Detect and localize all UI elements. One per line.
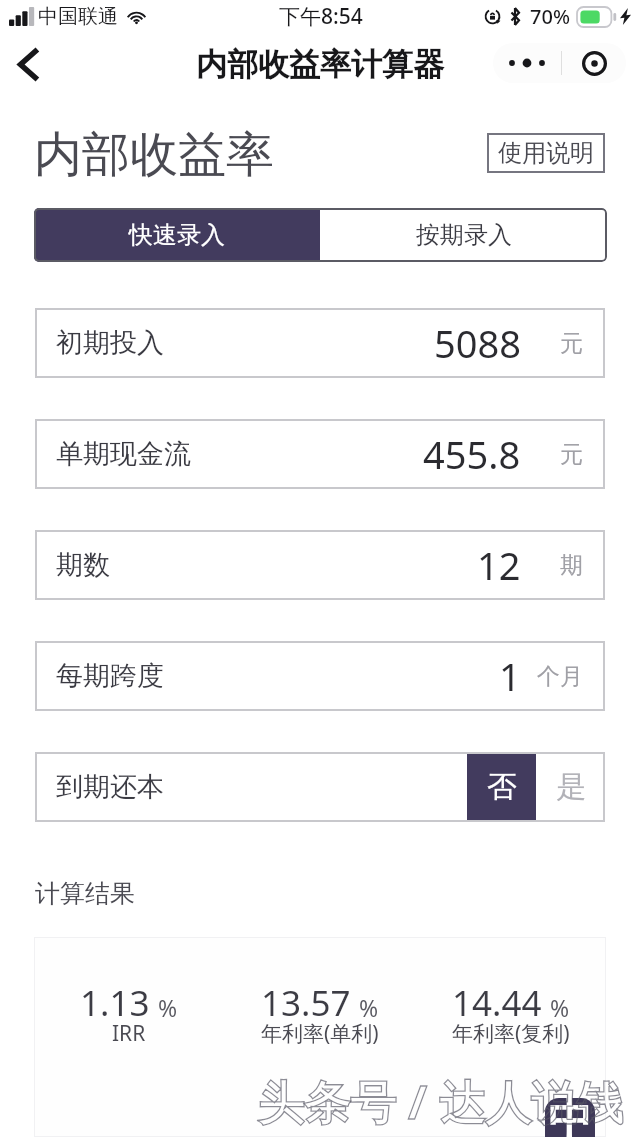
staticText: 头条号 / 达人说钱: [258, 1070, 624, 1133]
button[interactable]: 头条号: [545, 1098, 595, 1137]
staticText: 单期现金流: [56, 437, 191, 471]
staticText: 元: [560, 440, 583, 469]
staticText: 初期投入: [56, 326, 164, 360]
staticText: 个月: [537, 662, 583, 691]
staticText: 5088: [434, 317, 521, 369]
button[interactable]: 到期还本: [35, 752, 467, 822]
button[interactable]: 使用说明: [487, 133, 605, 173]
staticText: 每期跨度: [56, 659, 164, 693]
staticText: 否: [487, 768, 517, 806]
staticText: 12: [477, 539, 521, 591]
staticText: 快速录入: [129, 220, 225, 250]
button[interactable]: 初期投入: [35, 308, 605, 378]
staticText: %: [158, 992, 178, 1023]
staticText: 元: [560, 329, 583, 358]
staticText: 年利率(单利): [261, 1019, 379, 1048]
button[interactable]: 按期录入: [320, 208, 607, 262]
button[interactable]: 否: [467, 752, 536, 822]
button[interactable]: 期数: [35, 530, 605, 600]
staticText: 下午8:54: [279, 2, 363, 31]
staticText: 按期录入: [416, 220, 512, 250]
staticText: 年利率(复利): [452, 1019, 570, 1048]
staticText: 到期还本: [56, 770, 164, 804]
button[interactable]: 更多: [493, 43, 561, 83]
staticText: 内部收益率: [34, 125, 274, 185]
staticText: IRR: [112, 1019, 146, 1048]
staticText: 455.8: [423, 428, 521, 480]
staticText: 期数: [56, 548, 110, 582]
staticText: %: [359, 992, 379, 1023]
staticText: 70%: [530, 3, 570, 30]
staticText: 1: [499, 650, 521, 702]
button[interactable]: 快速录入: [34, 208, 320, 262]
staticText: 1.13: [80, 979, 150, 1027]
button[interactable]: 单期现金流: [35, 419, 605, 489]
staticText: 计算结果: [35, 878, 135, 909]
staticText: 是: [556, 768, 586, 806]
staticText: 中国联通: [38, 4, 118, 29]
button[interactable]: 关闭小程序: [562, 43, 626, 83]
button[interactable]: 是: [536, 752, 605, 822]
staticText: %: [550, 992, 570, 1023]
staticText: 使用说明: [498, 138, 594, 168]
staticText: 内部收益率计算器: [196, 45, 444, 84]
button[interactable]: 每期跨度: [35, 641, 605, 711]
staticText: 期: [560, 551, 583, 580]
staticText: 14.44: [452, 979, 542, 1027]
button[interactable]: 返回: [5, 36, 53, 92]
staticText: 中: [548, 1098, 592, 1137]
staticText: 13.57: [261, 979, 351, 1027]
